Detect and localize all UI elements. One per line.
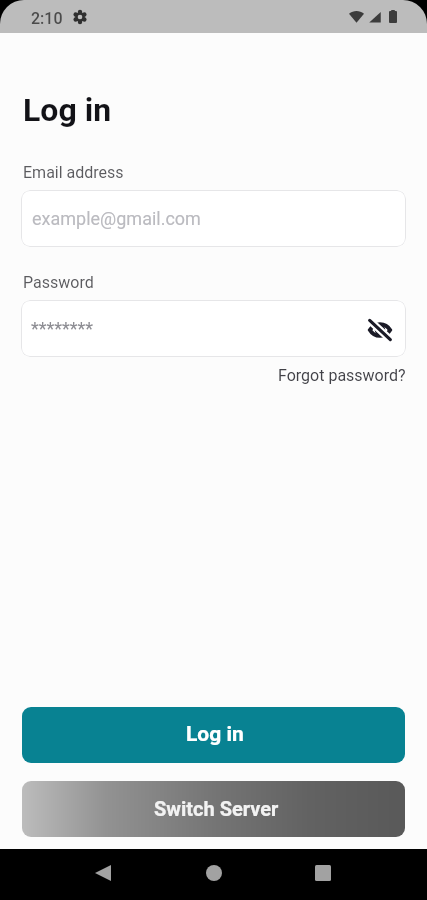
button[interactable]: Back (80, 850, 126, 896)
button[interactable]: Switch Server (22, 781, 405, 837)
staticText: 2:10 (31, 9, 63, 28)
staticText: Email address (23, 163, 124, 182)
staticText: Password (23, 273, 94, 292)
staticText: example@gmail.com (32, 208, 201, 229)
staticText: ******** (31, 318, 365, 339)
button[interactable]: Log in (22, 707, 405, 763)
staticText: Forgot password? (278, 366, 406, 385)
button[interactable]: Show password (364, 314, 396, 346)
staticText: Log in (186, 722, 244, 747)
button[interactable]: Recent apps (300, 850, 346, 896)
staticText: Switch Server (154, 797, 279, 820)
button[interactable]: example@gmail.com (21, 190, 406, 247)
button[interactable]: ******** (21, 300, 406, 357)
staticText: Log in (23, 91, 112, 129)
button[interactable]: Home (191, 850, 237, 896)
button[interactable]: Forgot password? (278, 366, 427, 385)
